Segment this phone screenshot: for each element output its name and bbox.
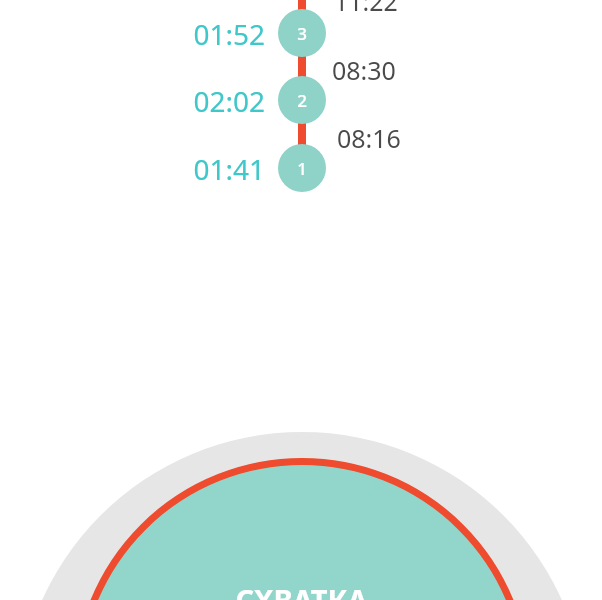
staticText: 08:16 [337, 121, 401, 153]
button[interactable]: 01:41 [165, 150, 265, 186]
button[interactable]: 08:30 [332, 53, 418, 85]
staticText: 11:22 [334, 0, 398, 16]
staticText: 1 [297, 157, 307, 180]
button[interactable]: СХВАТКА [0, 0, 602, 600]
button[interactable]: 02:02 [165, 82, 265, 118]
staticText: 3 [297, 22, 307, 45]
button[interactable]: 11:22 [334, 0, 420, 16]
staticText: 02:02 [193, 82, 265, 118]
button[interactable]: 08:16 [337, 121, 423, 153]
staticText: 08:30 [332, 53, 396, 85]
button[interactable]: 3 [278, 9, 326, 57]
staticText: 01:41 [193, 150, 265, 186]
button[interactable]: 01:52 [165, 15, 265, 51]
staticText: СХВАТКА [235, 580, 368, 600]
staticText: 01:52 [193, 15, 265, 51]
staticText: 2 [297, 89, 307, 112]
button[interactable]: 2 [278, 76, 326, 124]
button[interactable]: 1 [278, 144, 326, 192]
